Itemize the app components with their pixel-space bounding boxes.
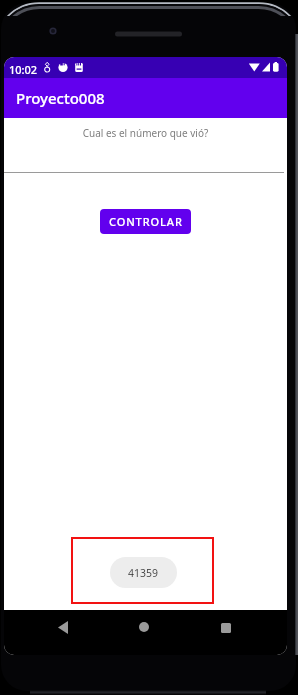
- staticText: Cual es el número que vió?: [4, 126, 287, 140]
- staticText: Proyecto008: [16, 88, 105, 108]
- staticText: 10:02: [9, 62, 38, 77]
- button[interactable]: 41359: [110, 557, 177, 588]
- button[interactable]: Back: [46, 610, 80, 644]
- staticText: 41359: [128, 566, 159, 580]
- button[interactable]: CONTROLAR: [100, 209, 191, 234]
- staticText: CONTROLAR: [109, 214, 183, 229]
- button[interactable]: Home: [127, 610, 161, 644]
- button[interactable]: Recent apps: [209, 611, 243, 645]
- button[interactable]: Cual es el número que vió?: [4, 118, 287, 173]
